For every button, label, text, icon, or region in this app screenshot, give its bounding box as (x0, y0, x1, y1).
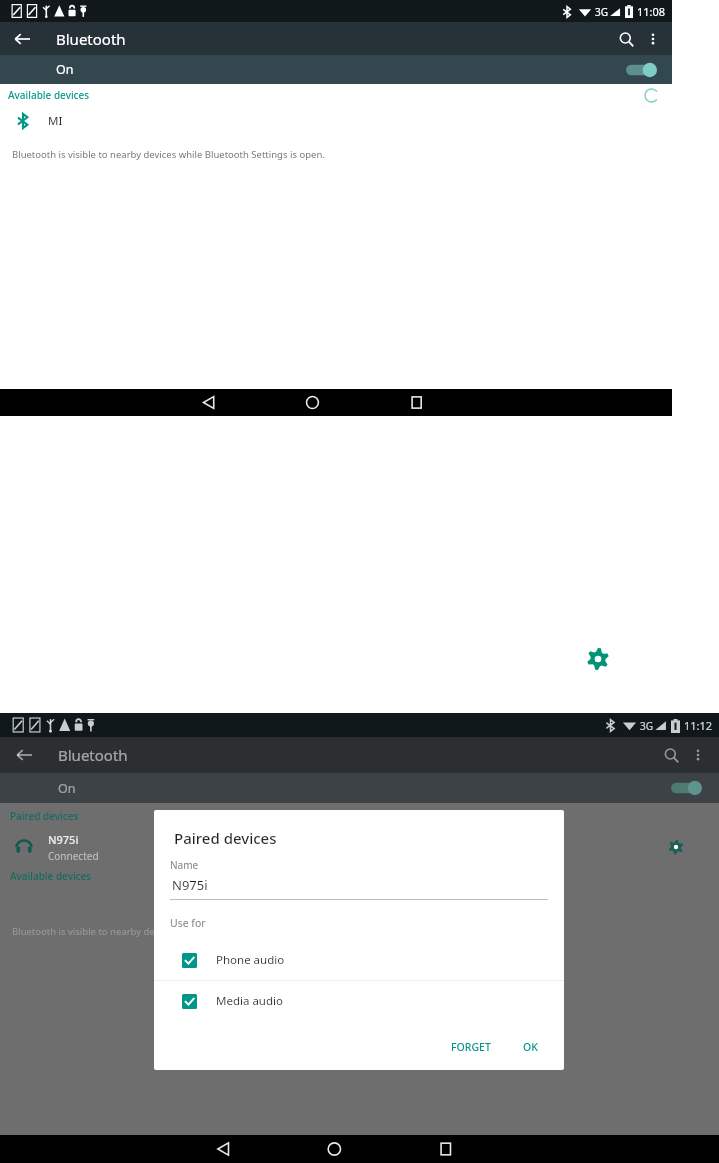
button[interactable]: More options (640, 26, 666, 52)
staticText: Available devices (8, 88, 90, 102)
staticText: OK (523, 1040, 538, 1054)
button[interactable]: MI (0, 106, 672, 136)
staticText: Use for (170, 916, 206, 930)
button[interactable]: Media audio (154, 981, 564, 1021)
staticText: Available devices (10, 869, 92, 883)
staticText: 11:08 (637, 4, 666, 19)
staticText: On (56, 61, 74, 78)
staticText: Bluetooth (56, 29, 126, 49)
button[interactable]: Back (8, 25, 36, 53)
button[interactable]: Device settings (665, 836, 687, 858)
staticText: Paired devices (10, 809, 79, 823)
staticText: On (58, 780, 76, 797)
staticText: Bluetooth (58, 745, 128, 765)
staticText: N975i (48, 832, 79, 847)
staticText: Paired devices (174, 828, 277, 848)
button[interactable]: On (0, 55, 672, 84)
button[interactable]: Phone audio (154, 940, 564, 980)
staticText: Bluetooth is visible to nearby devices w… (12, 925, 325, 938)
button[interactable]: More options (685, 742, 711, 768)
button[interactable]: On (0, 773, 719, 803)
staticText: N975i (172, 876, 208, 894)
staticText: Name (170, 858, 199, 872)
staticText: MI (48, 113, 63, 129)
staticText: 3G (595, 5, 608, 19)
button[interactable]: OK (515, 1034, 546, 1060)
button[interactable]: Back (10, 741, 38, 769)
button[interactable]: Search (657, 741, 685, 769)
staticText: Bluetooth is visible to nearby devices w… (12, 148, 325, 161)
staticText: Media audio (216, 993, 283, 1009)
button[interactable]: FORGET (443, 1034, 499, 1060)
button[interactable]: Search (612, 25, 640, 53)
staticText: Connected (48, 849, 99, 863)
staticText: FORGET (451, 1040, 491, 1054)
staticText: 3G (640, 719, 653, 733)
button[interactable]: N975i (0, 829, 719, 865)
staticText: Phone audio (216, 952, 285, 968)
button[interactable]: Device settings (583, 644, 613, 674)
staticText: 11:12 (684, 718, 713, 733)
